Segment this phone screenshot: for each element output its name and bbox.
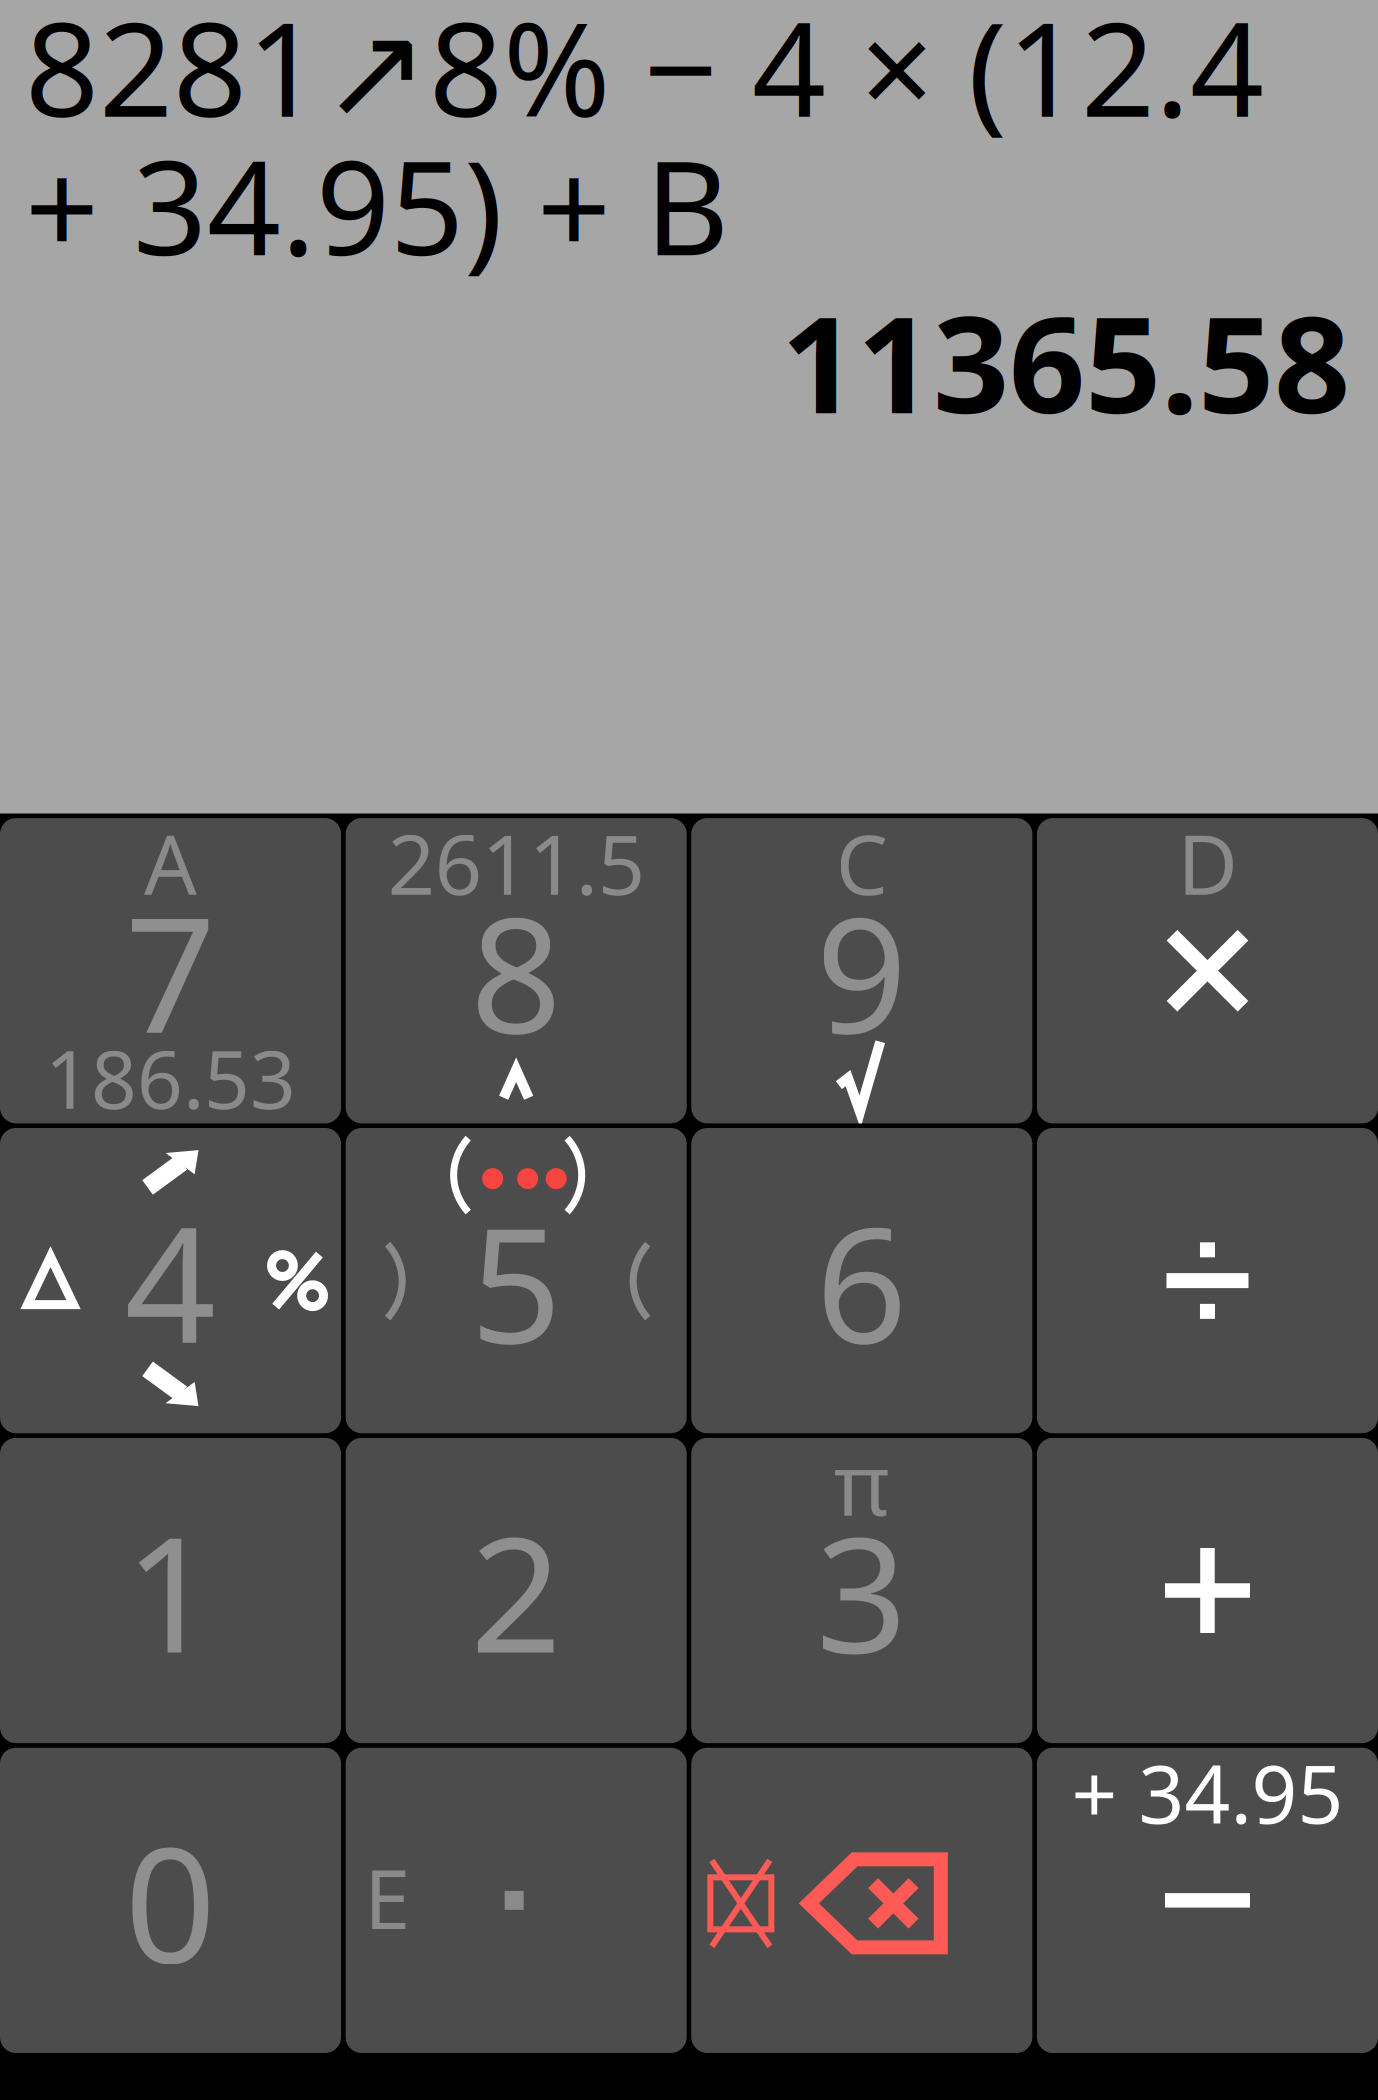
button[interactable]: 6 bbox=[691, 1128, 1032, 1433]
button[interactable]: multiply, memory D bbox=[1037, 818, 1378, 1123]
button[interactable]: clear and delete bbox=[691, 1748, 1032, 2053]
button[interactable]: 3, pi bbox=[691, 1438, 1032, 1743]
button[interactable]: 2 bbox=[346, 1438, 687, 1743]
staticText: 11365.58 bbox=[781, 273, 1350, 450]
staticText: D bbox=[1177, 808, 1237, 918]
button[interactable]: 8, 2611.5, power bbox=[346, 818, 687, 1123]
staticText: 2611.5 bbox=[388, 808, 645, 918]
staticText: 1 bbox=[124, 1484, 216, 1697]
staticText: 9 bbox=[816, 864, 908, 1077]
staticText: 0 bbox=[124, 1794, 216, 2007]
staticText: 8281↗8% − 4 × (12.4 bbox=[25, 0, 1264, 152]
button[interactable]: 4, percent, delta, increase, decrease bbox=[0, 1128, 341, 1433]
staticText: 3 bbox=[816, 1484, 908, 1697]
staticText: 186.53 bbox=[45, 1025, 296, 1131]
staticText: + 34.95) + B bbox=[25, 119, 729, 291]
staticText: 5 bbox=[470, 1174, 562, 1387]
staticText: 8 bbox=[470, 864, 562, 1077]
staticText: A bbox=[144, 808, 197, 918]
staticText: π bbox=[834, 1426, 890, 1539]
staticText: C bbox=[836, 808, 888, 918]
staticText: + 34.95 bbox=[1071, 1739, 1343, 1845]
button[interactable]: 5, parentheses bbox=[346, 1128, 687, 1433]
staticText: 2 bbox=[470, 1484, 562, 1697]
staticText: 4 bbox=[124, 1174, 216, 1387]
staticText: 7 bbox=[124, 864, 216, 1077]
staticText: E bbox=[364, 1842, 410, 1952]
button[interactable]: 7, memory A, 186.53 bbox=[0, 818, 341, 1123]
button[interactable]: add bbox=[1037, 1438, 1378, 1743]
button[interactable]: subtract, plus 34.95 bbox=[1037, 1748, 1378, 2053]
button[interactable]: 9, memory C, square root bbox=[691, 818, 1032, 1123]
button[interactable]: 1 bbox=[0, 1438, 341, 1743]
staticText: 6 bbox=[816, 1174, 908, 1387]
button[interactable]: divide bbox=[1037, 1128, 1378, 1433]
button[interactable]: 0 bbox=[0, 1748, 341, 2053]
button[interactable]: exponent, decimal point bbox=[346, 1748, 687, 2053]
